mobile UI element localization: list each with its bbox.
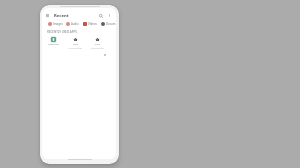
button[interactable]: More options (106, 12, 112, 18)
staticText: RECENTLY USED APPS (47, 30, 77, 34)
staticText: 12.50 MB free (68, 47, 82, 50)
staticText: Images (53, 22, 63, 26)
staticText: Audio (71, 22, 79, 26)
button[interactable]: Images (48, 21, 63, 26)
staticText: Videos (88, 22, 97, 26)
button[interactable]: Downloads (43, 36, 63, 46)
staticText: Drive (73, 43, 78, 46)
button[interactable]: Search (97, 12, 104, 19)
staticText: Docum (106, 22, 116, 26)
button[interactable]: Audio (66, 21, 79, 26)
button[interactable]: Menu (44, 12, 51, 19)
button[interactable]: Docum (101, 21, 116, 26)
staticText: Downloads (48, 43, 59, 46)
button[interactable]: Videos (83, 21, 97, 26)
button[interactable]: More (103, 53, 107, 57)
staticText: Recent (54, 13, 69, 19)
staticText: 10.00 GB free (90, 47, 104, 50)
staticText: Shop (95, 43, 100, 46)
button[interactable]: Drive (65, 36, 85, 50)
button[interactable]: Shop (87, 36, 107, 50)
